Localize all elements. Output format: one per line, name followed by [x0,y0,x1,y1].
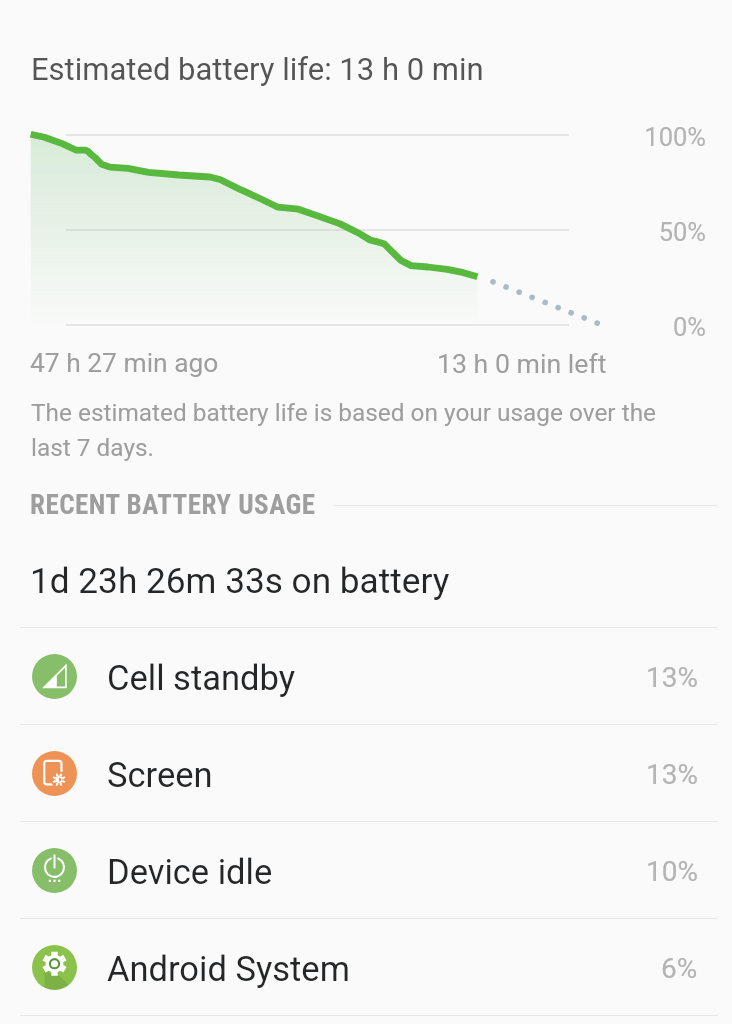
button[interactable]: Cell standby [0,628,732,724]
staticText: 50% [658,217,706,247]
staticText: Screen [107,755,213,795]
staticText: 13% [646,661,698,694]
staticText: The estimated battery life is based on y… [31,398,657,462]
staticText: 0% [672,312,706,342]
staticText: Cell standby [107,658,295,698]
staticText: 6% [661,952,698,985]
button[interactable]: Android System [0,919,732,1015]
staticText: 13 h 0 min left [437,348,607,379]
staticText: Android System [107,949,350,989]
staticText: 47 h 27 min ago [30,348,219,379]
staticText: 10% [646,855,698,888]
staticText: 100% [644,122,706,152]
button[interactable]: Device idle [0,822,732,918]
staticText: 13% [646,758,698,791]
staticText: Estimated battery life: 13 h 0 min [31,51,484,87]
staticText: 1d 23h 26m 33s on battery [30,560,450,601]
button[interactable]: Screen [0,725,732,821]
staticText: RECENT BATTERY USAGE [30,489,316,521]
staticText: Device idle [107,852,273,892]
